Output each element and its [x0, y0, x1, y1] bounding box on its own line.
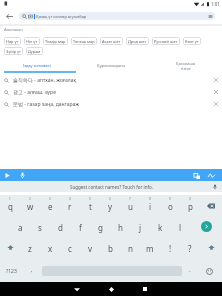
button[interactable]: 2: [20, 195, 40, 216]
button[interactable]: 솔직하다 - аптхан, жоғалақ: [0, 74, 222, 86]
button[interactable]: Нін үт: [24, 37, 40, 45]
button[interactable]: Русский шет: [152, 37, 180, 45]
staticText: i: [149, 201, 152, 212]
button[interactable]: k: [150, 216, 170, 237]
button[interactable]: l: [170, 216, 190, 237]
staticText: Тімдір мар: [45, 39, 66, 44]
button[interactable]: Зүйір үт: [4, 47, 23, 55]
button[interactable]: Іздеу нәтижесі: [0, 60, 74, 71]
button[interactable]: 3: [40, 195, 60, 216]
staticText: x: [48, 243, 53, 254]
staticText: e: [48, 201, 53, 212]
button[interactable]: Translate: [192, 171, 201, 180]
staticText: Нін үт: [26, 39, 38, 44]
staticText: s: [38, 222, 42, 233]
button[interactable]: Топыш мар: [71, 37, 97, 45]
staticText: b: [108, 243, 113, 254]
button[interactable]: Next: [2, 170, 12, 180]
staticText: 5: [89, 197, 91, 201]
button[interactable]: Тімдір мар: [43, 37, 68, 45]
button[interactable]: ,: [22, 258, 42, 284]
staticText: .: [189, 266, 191, 274]
staticText: !: [169, 243, 172, 254]
button[interactable]: Home: [101, 282, 121, 296]
button[interactable]: 5: [80, 195, 100, 216]
staticText: Көлт үт: [185, 39, 199, 44]
button[interactable]: Handwriting: [207, 171, 216, 180]
button[interactable]: Back: [67, 282, 87, 296]
staticText: 솔직하다 - аптхан, жоғалақ: [13, 77, 77, 84]
staticText: n: [128, 243, 133, 254]
staticText: y: [108, 201, 113, 212]
button[interactable]: !: [160, 237, 180, 258]
staticText: c: [68, 243, 72, 254]
button[interactable]: Recent apps: [135, 282, 155, 296]
button[interactable]: Remove: [211, 75, 221, 85]
staticText: 7: [129, 197, 131, 201]
button[interactable]: f: [70, 216, 90, 237]
button[interactable]: 4: [60, 195, 80, 216]
button[interactable]: x: [40, 237, 60, 258]
button[interactable]: n: [120, 237, 140, 258]
button[interactable]: j: [130, 216, 150, 237]
button[interactable]: Voice input: [210, 182, 219, 191]
button[interactable]: 7: [120, 195, 140, 216]
button[interactable]: Remove: [211, 87, 221, 97]
button[interactable]: z: [20, 237, 40, 258]
staticText: m: [146, 243, 154, 254]
staticText: h: [118, 222, 123, 233]
staticText: Нар үт: [6, 39, 19, 44]
staticText: Дрод шет: [128, 39, 147, 44]
button[interactable]: Көлт үт: [183, 37, 201, 45]
button[interactable]: Нар үт: [4, 37, 21, 45]
button[interactable]: ?123: [0, 258, 22, 284]
button[interactable]: 0: [180, 195, 200, 216]
button[interactable]: Enter: [190, 216, 222, 237]
button[interactable]: 문법 - газар заңа, дангараж: [0, 98, 222, 110]
button[interactable]: Shift: [0, 237, 20, 258]
button[interactable]: Shift: [200, 237, 222, 258]
staticText: v: [88, 243, 93, 254]
button[interactable]: h: [110, 216, 130, 237]
button[interactable]: Құрылымдағы: [74, 60, 148, 71]
button[interactable]: ?: [180, 237, 200, 258]
staticText: k: [158, 222, 163, 233]
staticText: a: [18, 222, 23, 233]
staticText: Ағылшын: [4, 27, 23, 32]
button[interactable]: 6: [100, 195, 120, 216]
button[interactable]: 9: [160, 195, 180, 216]
staticText: d: [58, 222, 63, 233]
button[interactable]: g: [90, 216, 110, 237]
button[interactable]: m: [140, 237, 160, 258]
staticText: Дүрам: [28, 49, 41, 54]
button[interactable]: 8: [140, 195, 160, 216]
staticText: w: [27, 201, 34, 212]
button[interactable]: 광고 - алғаш, әуре: [0, 86, 222, 98]
button[interactable]: Backspace: [200, 195, 222, 216]
button[interactable]: Back: [3, 10, 16, 23]
staticText: Suggest contact names? Touch for info.: [70, 184, 153, 190]
button[interactable]: Emoji: [198, 258, 220, 284]
button[interactable]: v: [80, 237, 100, 258]
staticText: g: [98, 222, 103, 233]
button[interactable]: Voice input: [17, 170, 27, 180]
button[interactable]: c: [60, 237, 80, 258]
button[interactable]: Қосымша тізімі: [148, 60, 222, 71]
staticText: q: [8, 201, 13, 212]
button[interactable]: s: [30, 216, 50, 237]
button[interactable]: Remove: [211, 99, 221, 109]
button[interactable]: Дүрам: [26, 47, 43, 55]
button[interactable]: Қазақ үт сөзлөр агуылбар: [19, 12, 215, 20]
staticText: p: [188, 201, 193, 212]
button[interactable]: Ақын шет: [100, 37, 123, 45]
staticText: Құрылымдағы: [97, 63, 126, 68]
button[interactable]: .: [182, 258, 198, 284]
button[interactable]: Дрод шет: [126, 37, 149, 45]
button[interactable]: d: [50, 216, 70, 237]
staticText: Ақын шет: [102, 39, 121, 44]
button[interactable]: a: [10, 216, 30, 237]
button[interactable]: b: [100, 237, 120, 258]
staticText: o: [168, 201, 173, 212]
button[interactable]: 1: [0, 195, 20, 216]
